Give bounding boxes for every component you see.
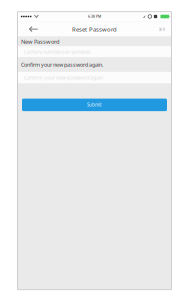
staticText: Confirm your new password again. bbox=[21, 61, 103, 68]
button[interactable]: Submit bbox=[22, 99, 167, 111]
staticText: Reset Password bbox=[72, 25, 117, 33]
button[interactable]: Letters, numbers or symbols bbox=[17, 46, 171, 57]
staticText: Confirm your new password again bbox=[24, 74, 103, 81]
button[interactable]: Confirm your new password again bbox=[17, 72, 171, 83]
staticText: New Password bbox=[21, 38, 60, 45]
staticText: 3/3 bbox=[158, 26, 164, 32]
button[interactable]: Back bbox=[26, 22, 41, 36]
staticText: Letters, numbers or symbols bbox=[24, 48, 90, 55]
staticText: 6:38 PM bbox=[88, 14, 101, 19]
staticText: Submit bbox=[87, 102, 102, 108]
button[interactable]: 3/3 bbox=[155, 22, 167, 36]
